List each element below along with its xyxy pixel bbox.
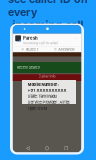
- staticText: Mobile Number:: [27, 82, 58, 87]
- staticText: Paresh: [23, 35, 38, 41]
- button[interactable]: Home: [40, 145, 54, 152]
- staticText: ◁: [26, 146, 30, 151]
- staticText: Caller Info: [38, 74, 55, 78]
- staticText: Service Provider: Airtel: [27, 100, 69, 105]
- staticText: ✆: [54, 47, 57, 51]
- staticText: incoming call to airtel: [23, 41, 58, 45]
- button[interactable]: ✆: [47, 47, 81, 52]
- staticText: REJECT: [25, 47, 38, 51]
- button[interactable]: Back: [21, 145, 35, 152]
- staticText: incoming call: [12, 18, 83, 31]
- staticText: Recent Search: [17, 65, 40, 70]
- staticText: +91 XXXXXXXXXX: [27, 88, 66, 93]
- staticText: ✕: [21, 47, 24, 51]
- staticText: see caller ID on every: [8, 0, 88, 18]
- staticText: ○: [45, 146, 49, 151]
- button[interactable]: ✕: [13, 47, 47, 52]
- staticText: □: [64, 146, 68, 151]
- staticText: ANSWER: [58, 47, 74, 51]
- staticText: Type: GSM: [27, 106, 47, 111]
- staticText: State: Tamilnadu: [27, 94, 56, 99]
- button[interactable]: Recents: [59, 145, 73, 152]
